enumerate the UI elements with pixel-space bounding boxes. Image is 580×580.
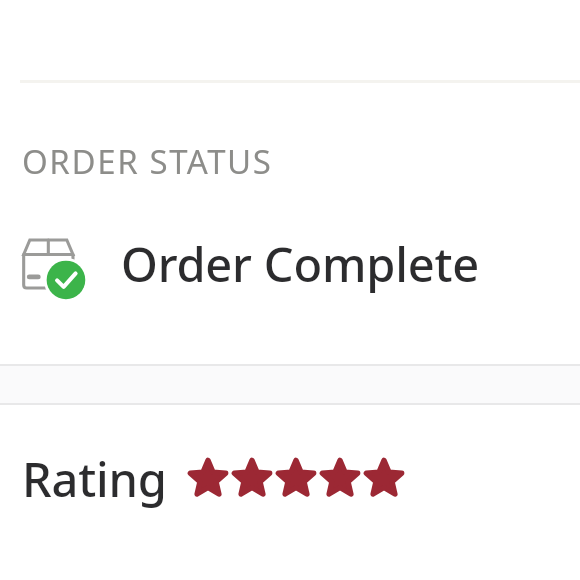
button[interactable]: Order complete package icon [0, 232, 580, 296]
staticText: Order Complete [121, 232, 480, 296]
button[interactable]: Rating [0, 447, 580, 511]
other: Rating 5 out of 5 stars [189, 460, 403, 498]
other: Order complete package icon [22, 236, 78, 292]
staticText: Rating [22, 447, 167, 511]
staticText: ORDER STATUS [22, 139, 273, 184]
